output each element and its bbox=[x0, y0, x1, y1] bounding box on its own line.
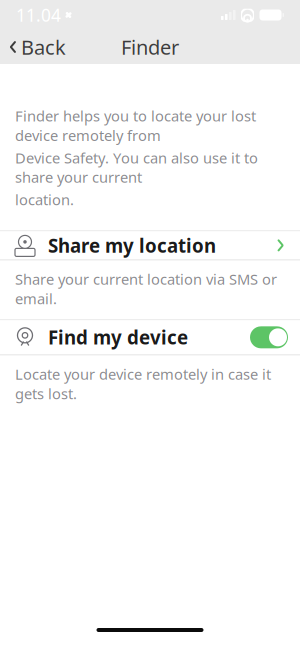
staticText: Device Safety. You can also use it to sh… bbox=[15, 148, 258, 187]
staticText: Share my location bbox=[48, 233, 216, 258]
staticText: 11.04 bbox=[16, 3, 61, 26]
staticText: location. bbox=[15, 190, 74, 209]
staticText: Share your current location via SMS or e… bbox=[15, 269, 277, 308]
button[interactable]: Back bbox=[0, 27, 74, 67]
staticText: Finder helps you to locate your lost dev… bbox=[15, 106, 256, 145]
staticText: Locate your device remotely in case it g… bbox=[15, 364, 271, 403]
staticText: Find my device bbox=[48, 325, 188, 350]
button[interactable]: Share my location bbox=[0, 231, 300, 259]
staticText: Back bbox=[21, 34, 66, 60]
button[interactable]: Find my device bbox=[0, 320, 300, 354]
staticText: Finder bbox=[121, 34, 179, 60]
